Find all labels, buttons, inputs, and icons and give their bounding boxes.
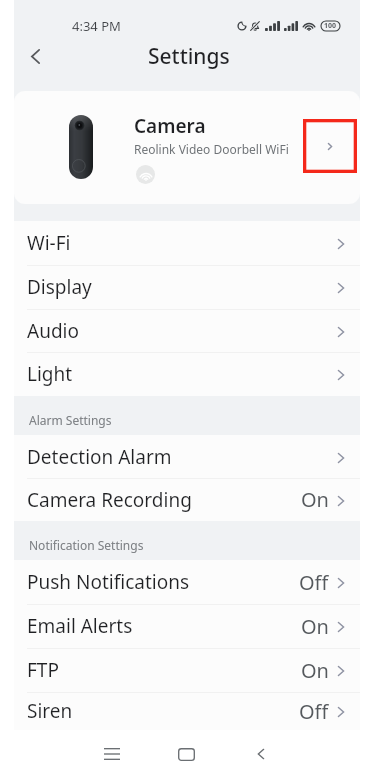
staticText: Alarm Settings	[29, 412, 112, 428]
staticText: Detection Alarm	[27, 444, 172, 470]
button[interactable]: Wi-Fi	[14, 221, 360, 265]
button[interactable]: Push Notifications	[14, 560, 360, 604]
button[interactable]: Audio	[14, 309, 360, 352]
button[interactable]: Detection Alarm	[14, 435, 360, 478]
staticText: Reolink Video Doorbell WiFi	[134, 141, 289, 157]
staticText: Camera	[134, 113, 206, 139]
button[interactable]: Back	[17, 38, 53, 74]
button[interactable]: Display	[14, 265, 360, 309]
staticText: Camera Recording	[27, 487, 192, 513]
staticText: Display	[27, 274, 92, 300]
staticText: Notification Settings	[29, 537, 144, 553]
staticText: Wi-Fi	[27, 230, 71, 256]
staticText: Light	[27, 361, 73, 387]
staticText: On	[301, 486, 329, 513]
button[interactable]: Camera	[14, 91, 360, 204]
staticText: Settings	[148, 42, 230, 71]
button[interactable]: Light	[14, 352, 360, 396]
staticText: Off	[299, 698, 329, 725]
button[interactable]: Camera Recording	[14, 478, 360, 521]
staticText: 4:34 PM	[72, 17, 121, 35]
staticText: FTP	[27, 657, 59, 683]
staticText: Off	[299, 569, 329, 596]
staticText: Email Alerts	[27, 613, 133, 639]
staticText: Audio	[27, 318, 79, 344]
staticText: On	[301, 657, 329, 684]
button[interactable]: Back	[241, 734, 281, 774]
button[interactable]: FTP	[14, 648, 360, 692]
button[interactable]: Recent apps	[92, 734, 132, 774]
button[interactable]: Email Alerts	[14, 604, 360, 648]
button[interactable]: Home	[166, 734, 206, 774]
staticText: 100	[324, 21, 337, 31]
staticText: On	[301, 613, 329, 640]
button[interactable]: Siren	[14, 692, 360, 730]
staticText: Siren	[27, 698, 73, 724]
staticText: Push Notifications	[27, 569, 190, 595]
button[interactable]: Camera details	[303, 119, 357, 173]
